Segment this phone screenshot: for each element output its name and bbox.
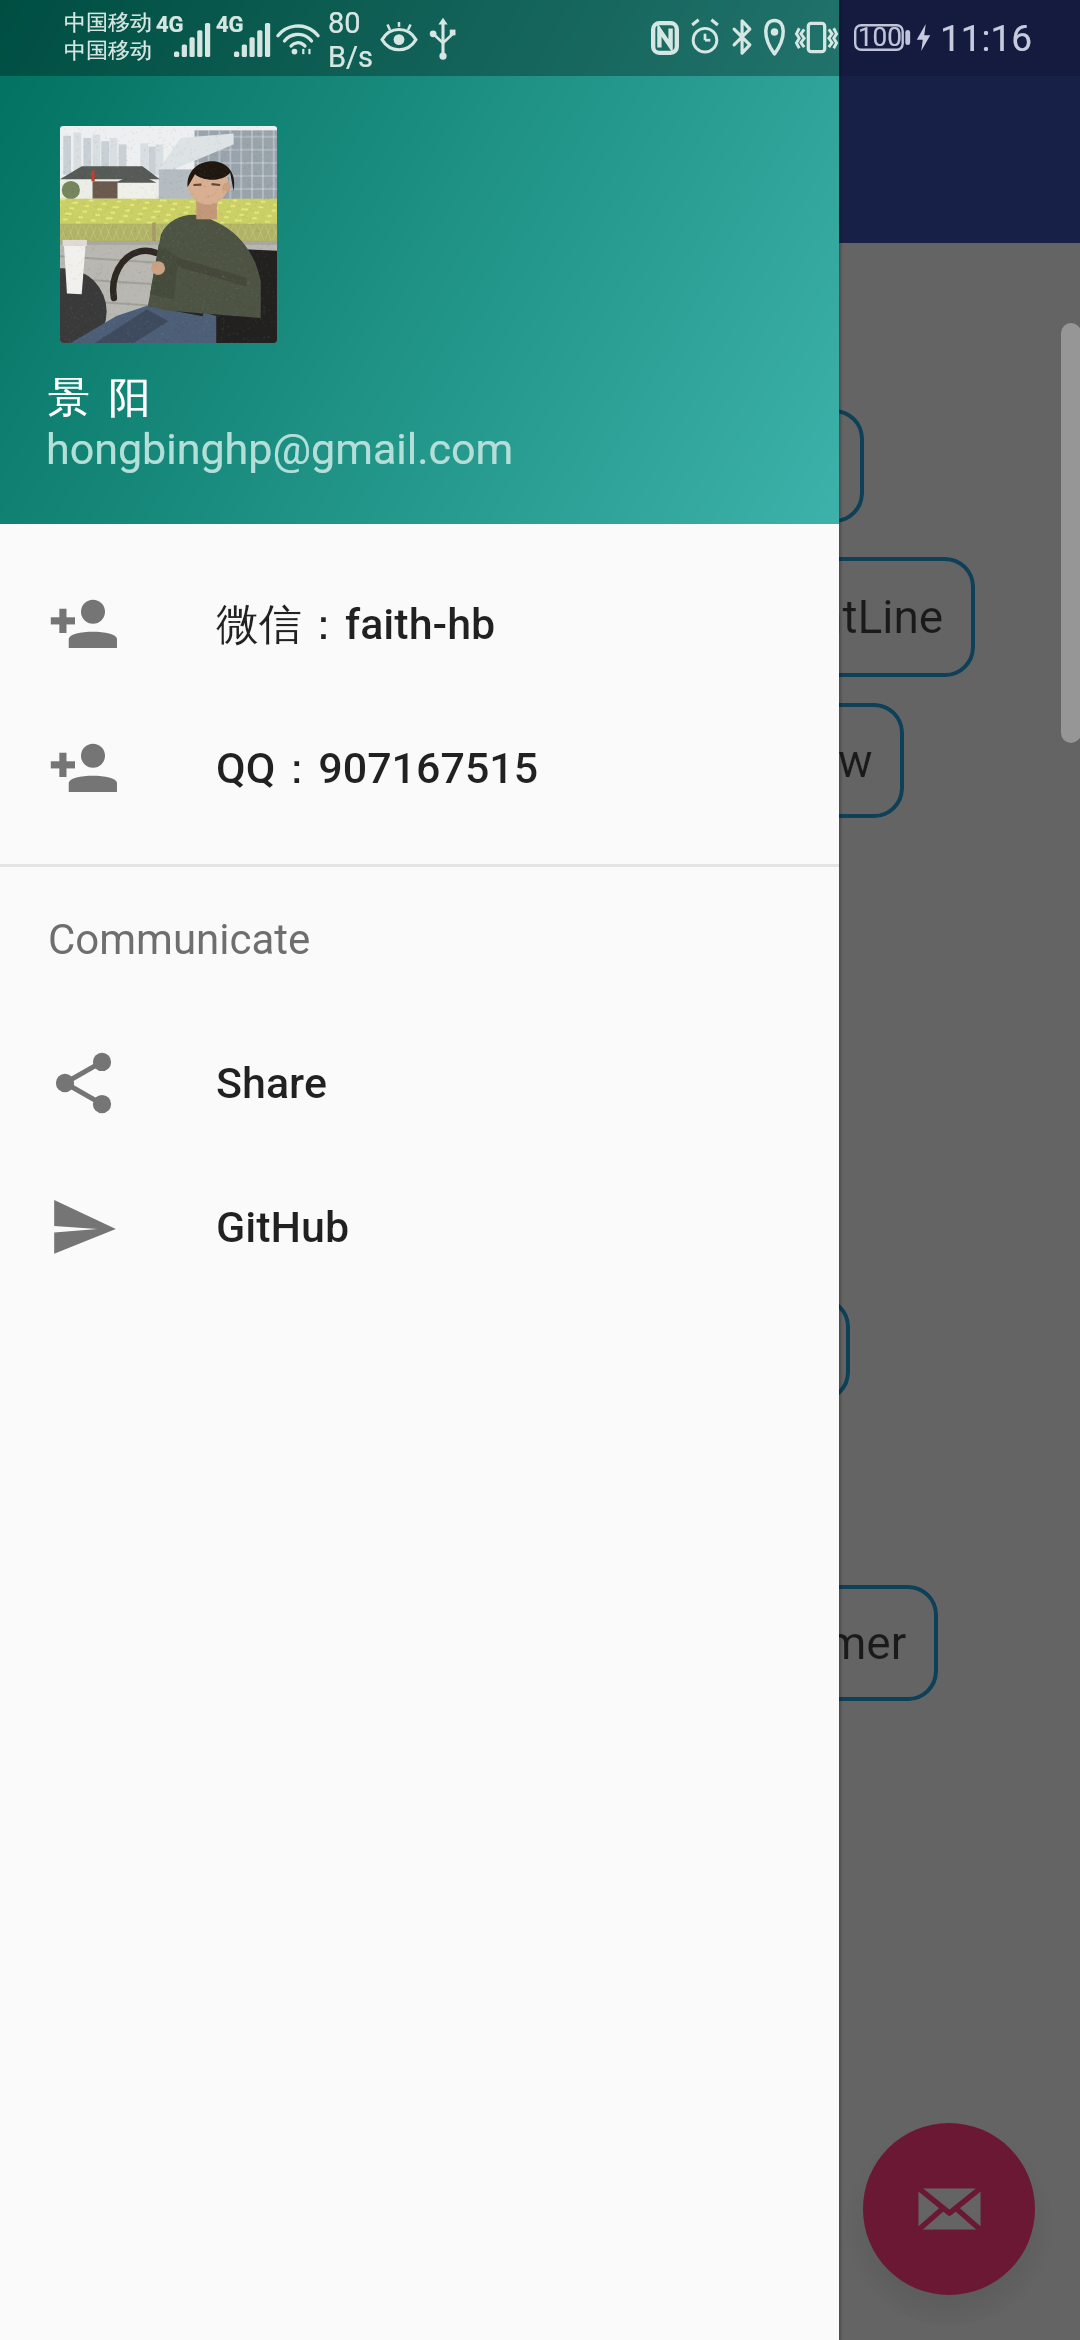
staticText: QQ：907167515 — [216, 742, 539, 796]
button[interactable]: GitHub — [0, 1155, 839, 1299]
staticText: B/s — [328, 40, 374, 74]
staticText: 11:16 — [940, 17, 1033, 60]
staticText: 4G — [156, 12, 184, 38]
button[interactable]: 微信：faith-hb — [0, 553, 839, 697]
staticText: 中国移动 — [64, 37, 152, 65]
button[interactable]: w — [640, 703, 904, 818]
staticText: 微信：faith-hb — [216, 598, 496, 652]
button[interactable]: mer — [620, 1585, 938, 1701]
button[interactable]: ntLine — [600, 557, 975, 677]
staticText: GitHub — [216, 1202, 350, 1252]
staticText: Communicate — [48, 915, 311, 964]
staticText: Share — [216, 1058, 327, 1108]
staticText: ntLine — [817, 590, 944, 644]
staticText: 4G — [216, 12, 244, 38]
button[interactable]: Compose message — [863, 2123, 1035, 2295]
button[interactable]: 景 阳, hongbinghp@gmail.com — [0, 0, 839, 524]
button[interactable]: Open item — [610, 409, 864, 523]
staticText: 100 — [858, 22, 902, 49]
button[interactable]: Share — [0, 1011, 839, 1155]
staticText: mer — [826, 1616, 907, 1670]
staticText: hongbinghp@gmail.com — [46, 424, 514, 474]
button[interactable]: Open item — [600, 1297, 850, 1402]
button[interactable]: QQ：907167515 — [0, 697, 839, 841]
staticText: 景 阳 — [48, 372, 155, 425]
staticText: 中国移动 — [64, 9, 152, 37]
staticText: w — [838, 734, 873, 788]
staticText: 80 — [328, 6, 361, 40]
